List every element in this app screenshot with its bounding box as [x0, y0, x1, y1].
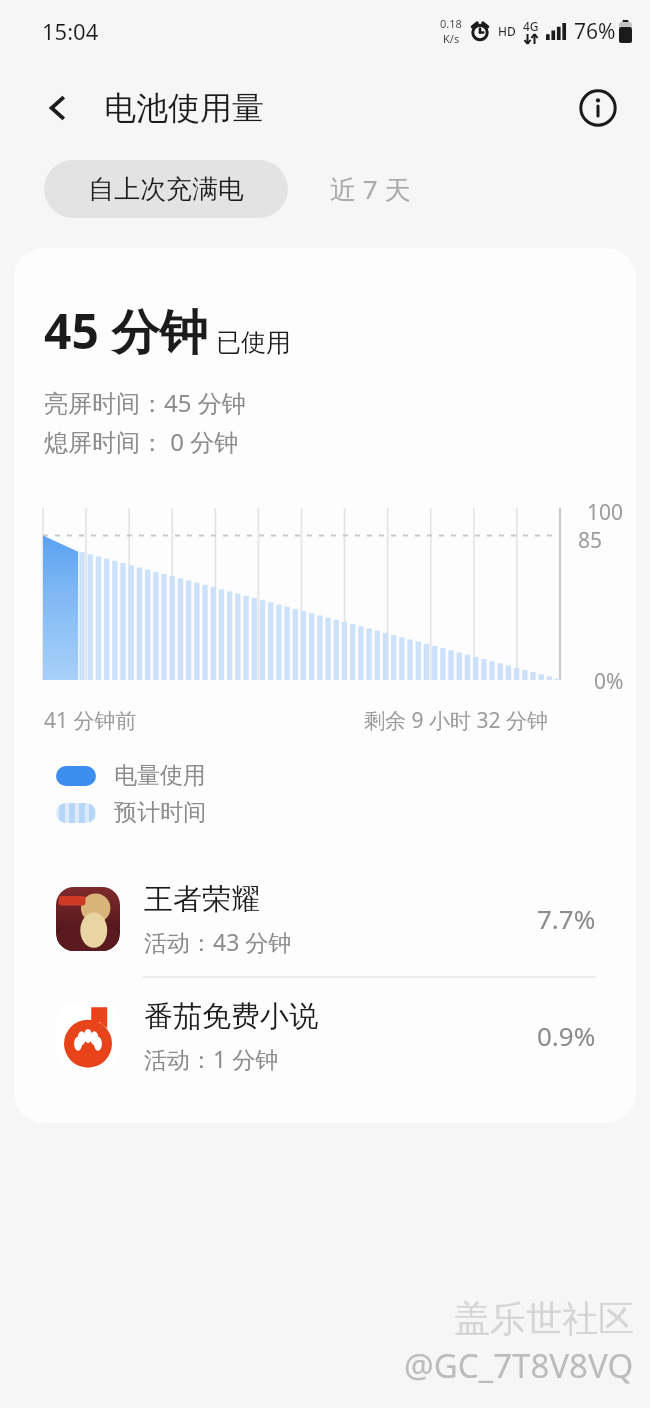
staticText: 76% [574, 17, 616, 46]
staticText: 电量使用 [114, 761, 206, 790]
staticText: @GC_7T8V8VQ [404, 1343, 634, 1388]
staticText: 自上次充满电 [88, 173, 244, 206]
staticText: 近 7 天 [330, 171, 411, 207]
staticText: 41 分钟前 [44, 706, 137, 735]
staticText: 活动：43 分钟 [144, 926, 292, 957]
staticText: 预计时间 [114, 798, 206, 827]
button[interactable]: 自上次充满电 [44, 160, 288, 218]
staticText: 4G [523, 18, 539, 34]
staticText: 0.9% [537, 1018, 596, 1053]
staticText: 85 [578, 526, 603, 555]
staticText: 番茄免费小说 [144, 998, 318, 1035]
button[interactable]: Information [572, 82, 624, 134]
staticText: 已使用 [216, 327, 291, 358]
button[interactable]: 近 7 天 [288, 160, 453, 218]
staticText: 盖乐世社区 [454, 1296, 634, 1341]
staticText: 活动：1 分钟 [144, 1043, 279, 1074]
staticText: 剩余 9 小时 32 分钟 [364, 706, 548, 735]
staticText: 电池使用量 [104, 88, 264, 128]
staticText: 王者荣耀 [144, 881, 260, 918]
button[interactable]: Back [30, 80, 86, 136]
button[interactable]: 番茄免费小说 [14, 978, 636, 1093]
staticText: 45 分钟 [44, 298, 208, 364]
staticText: 0.18 [440, 16, 462, 31]
staticText: 15:04 [42, 16, 99, 46]
staticText: 亮屏时间：45 分钟 [44, 386, 246, 419]
staticText: 7.7% [537, 901, 596, 936]
staticText: HD [498, 23, 516, 39]
staticText: 100 [587, 498, 624, 527]
staticText: K/s [443, 31, 460, 46]
staticText: 熄屏时间： 0 分钟 [44, 425, 239, 458]
button[interactable]: 王者荣耀 [14, 861, 636, 976]
staticText: 0% [594, 667, 624, 696]
